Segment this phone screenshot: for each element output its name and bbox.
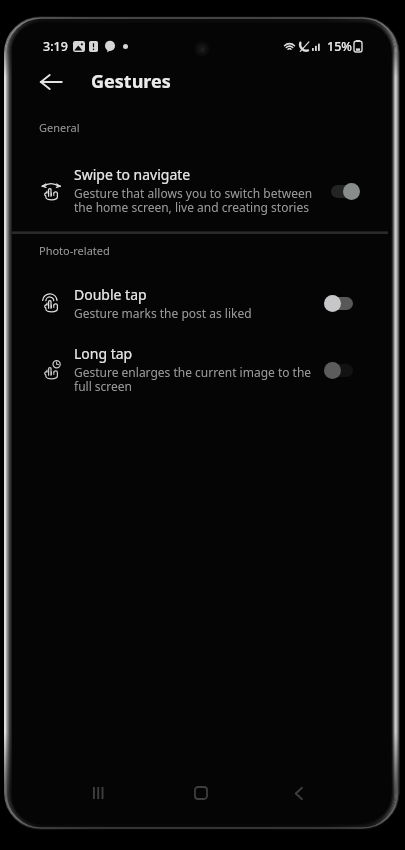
staticText: Gesture enlarges the current image to th… <box>74 364 318 395</box>
button[interactable]: Double tap <box>12 258 388 327</box>
staticText: Swipe to navigate <box>74 165 191 184</box>
staticText: Double tap <box>74 285 147 304</box>
staticText: Long tap <box>74 344 133 363</box>
button[interactable]: Back <box>29 68 73 95</box>
staticText: 3:19 <box>43 38 68 55</box>
button[interactable]: Recents <box>76 771 120 815</box>
button[interactable]: Home <box>179 771 223 815</box>
button[interactable]: Switch off <box>324 293 354 313</box>
staticText: Gesture that allows you to switch betwee… <box>74 185 318 216</box>
staticText: 15% <box>327 38 352 55</box>
button[interactable]: Switch on <box>330 181 360 201</box>
button[interactable]: Switch off <box>324 360 354 380</box>
staticText: Photo-related <box>39 243 110 258</box>
button[interactable]: Swipe to navigate <box>12 135 388 222</box>
staticText: Gestures <box>91 69 171 94</box>
staticText: Gesture marks the post as liked <box>74 305 252 321</box>
button[interactable]: Back <box>277 771 321 815</box>
staticText: General <box>39 120 80 135</box>
button[interactable]: Long tap <box>12 327 388 401</box>
